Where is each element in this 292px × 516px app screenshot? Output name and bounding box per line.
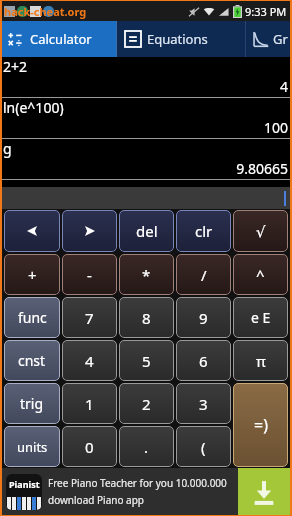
button[interactable]: ln(e^100) <box>2 98 290 139</box>
button[interactable]: / <box>176 254 231 295</box>
button[interactable]: =) <box>233 383 288 467</box>
button[interactable]: Move cursor left <box>4 210 60 252</box>
staticText: 1 <box>85 394 94 414</box>
staticText: + <box>28 265 37 285</box>
button[interactable]: Install app <box>238 468 290 515</box>
staticText: =) <box>254 414 268 436</box>
staticText: 8 <box>142 308 151 328</box>
button[interactable]: 3 <box>176 383 231 424</box>
staticText: 3 <box>199 394 208 414</box>
staticText: 9.80665 <box>2 159 288 178</box>
button[interactable]: Pianist <box>2 468 290 515</box>
button[interactable]: 6 <box>176 340 231 381</box>
staticText: 9:33 PM <box>245 4 287 19</box>
button[interactable]: * <box>119 254 174 295</box>
button[interactable]: func <box>4 297 60 338</box>
button[interactable]: del <box>119 210 174 252</box>
staticText: 4 <box>2 77 288 96</box>
staticText: . <box>144 437 149 457</box>
staticText: Pianist <box>9 478 40 490</box>
button[interactable]: 2+2 <box>2 57 290 98</box>
staticText: e E <box>251 308 271 327</box>
button[interactable]: Calculator <box>2 21 116 57</box>
button[interactable]: - <box>62 254 117 295</box>
button[interactable]: 4 <box>62 340 117 381</box>
button[interactable]: cnst <box>4 340 60 381</box>
staticText: 2+2 <box>3 57 290 76</box>
staticText: hack-cheat.org <box>4 4 87 19</box>
staticText: download Piano app <box>48 493 145 507</box>
staticText: cnst <box>18 351 46 370</box>
button[interactable]: 2 <box>119 383 174 424</box>
staticText: g <box>3 139 290 158</box>
staticText: 100 <box>2 118 288 137</box>
button[interactable]: e E <box>233 297 288 338</box>
staticText: 2 <box>142 394 151 414</box>
staticText: √ <box>256 223 266 240</box>
button[interactable]: √ <box>233 210 288 252</box>
staticText: func <box>18 308 47 327</box>
staticText: 7 <box>85 308 94 328</box>
staticText: clr <box>195 221 213 241</box>
staticText: * <box>142 265 151 285</box>
button[interactable]: units <box>4 426 60 467</box>
staticText: / <box>201 265 207 285</box>
staticText: del <box>136 221 158 241</box>
staticText: 0 <box>85 437 94 457</box>
button[interactable]: . <box>119 426 174 467</box>
staticText: Free Piano Teacher for you 10.000.000 <box>48 476 227 490</box>
button[interactable]: Gr <box>246 21 290 57</box>
button[interactable]: 5 <box>119 340 174 381</box>
staticText: ^ <box>256 265 265 285</box>
button[interactable]: ( <box>176 426 231 467</box>
button[interactable]: clr <box>176 210 231 252</box>
staticText: π <box>256 351 266 371</box>
button[interactable]: 9 <box>176 297 231 338</box>
staticText: ( <box>201 437 206 457</box>
staticText: Gr <box>273 30 288 48</box>
staticText: trig <box>20 394 44 413</box>
staticText: - <box>87 265 92 285</box>
staticText: Calculator <box>30 30 92 48</box>
staticText: 6 <box>199 351 208 371</box>
staticText: 5 <box>142 351 151 371</box>
staticText: 4 <box>85 351 94 371</box>
button[interactable]: 7 <box>62 297 117 338</box>
button[interactable] <box>2 187 290 209</box>
button[interactable]: g <box>2 139 290 180</box>
button[interactable]: trig <box>4 383 60 424</box>
button[interactable]: π <box>233 340 288 381</box>
button[interactable]: 0 <box>62 426 117 467</box>
button[interactable]: 8 <box>119 297 174 338</box>
button[interactable]: ^ <box>233 254 288 295</box>
staticText: Equations <box>147 30 208 48</box>
button[interactable]: Move cursor right <box>62 210 117 252</box>
staticText: 9 <box>199 308 208 328</box>
button[interactable]: 1 <box>62 383 117 424</box>
button[interactable]: Equations <box>117 21 245 57</box>
staticText: units <box>17 438 48 456</box>
button[interactable]: + <box>4 254 60 295</box>
staticText: ln(e^100) <box>3 98 290 117</box>
